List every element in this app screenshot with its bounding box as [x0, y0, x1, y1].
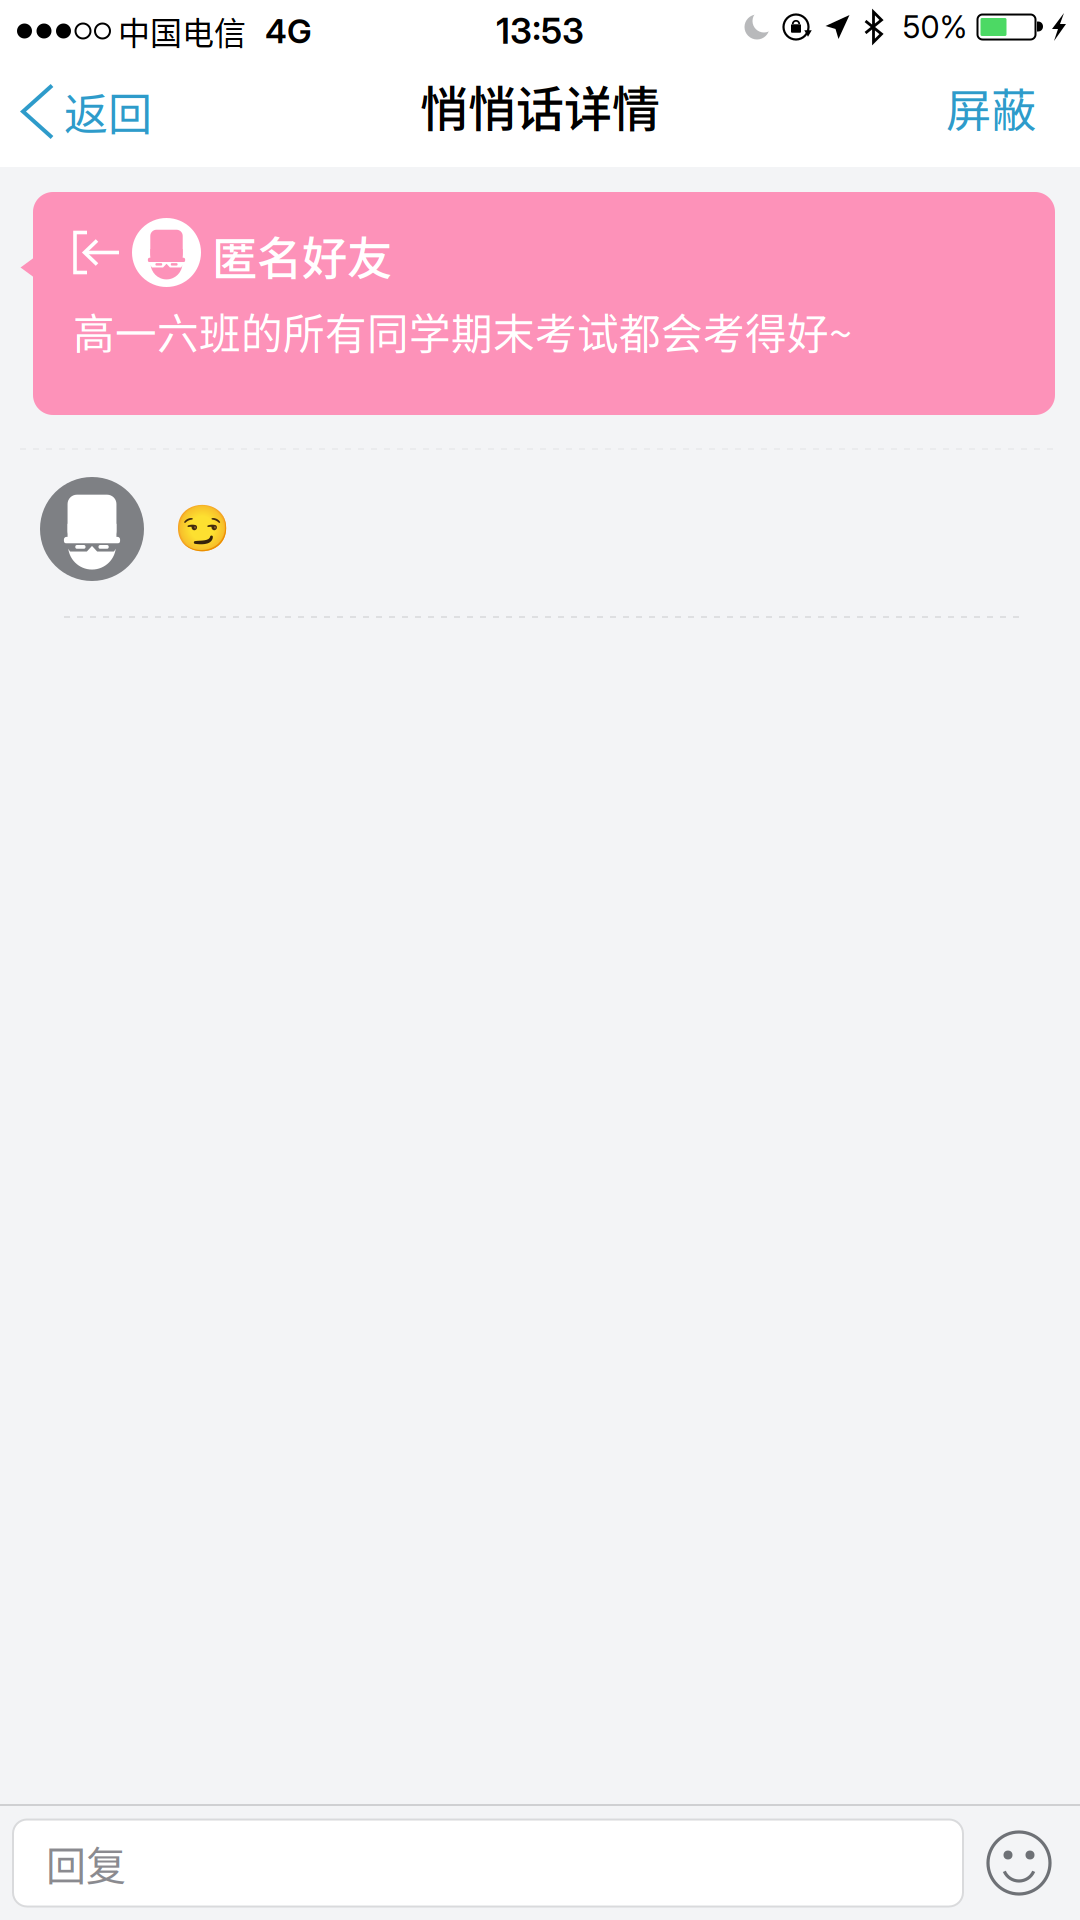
staticText: 回复 [46, 1834, 126, 1892]
staticText: 高一六班的所有同学期末考试都会考得好~ [73, 301, 852, 361]
staticText: 屏蔽 [946, 75, 1036, 140]
button[interactable]: 屏蔽 [918, 62, 1080, 161]
staticText: 😏 [174, 502, 230, 555]
staticText: 50% [902, 8, 967, 45]
button[interactable]: 回复 [13, 1819, 963, 1906]
staticText: 中国电信 [118, 8, 246, 54]
staticText: 匿名好友 [212, 223, 392, 288]
staticText: 返回 [64, 80, 152, 143]
staticText: 13:53 [496, 10, 584, 52]
button[interactable]: Emoji keyboard [985, 1829, 1053, 1897]
staticText: 悄悄话详情 [420, 71, 660, 140]
staticText: 4G [265, 11, 312, 51]
button[interactable]: 返回 [0, 62, 174, 161]
